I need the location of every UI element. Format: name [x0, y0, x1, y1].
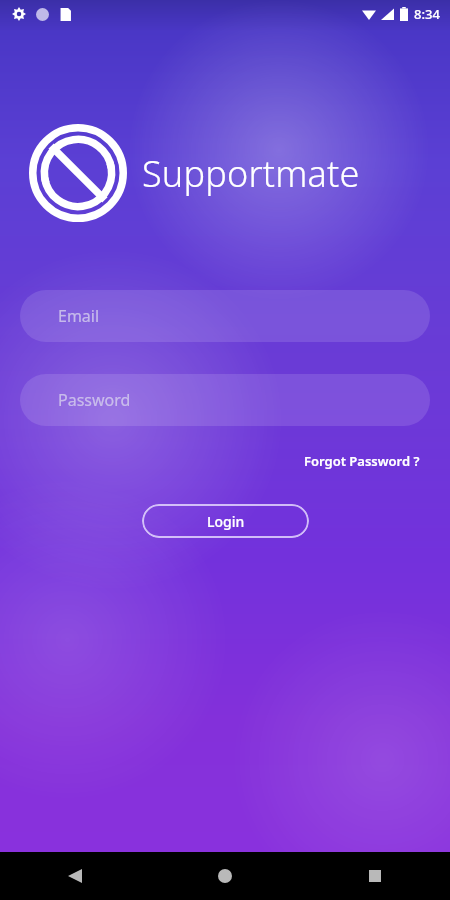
button[interactable]: Login: [142, 504, 309, 538]
button[interactable]: Email: [20, 290, 430, 342]
staticText: 8:34: [414, 5, 440, 23]
staticText: Email: [58, 305, 100, 327]
staticText: Login: [207, 512, 245, 531]
staticText: Supportmate: [142, 149, 360, 198]
button[interactable]: Forgot Password ?: [302, 448, 422, 474]
staticText: Password: [58, 389, 131, 411]
button[interactable]: Back: [0, 852, 150, 900]
button[interactable]: Recents: [300, 852, 450, 900]
button[interactable]: Password: [20, 374, 430, 426]
button[interactable]: Home: [150, 852, 300, 900]
staticText: Forgot Password ?: [304, 452, 420, 470]
